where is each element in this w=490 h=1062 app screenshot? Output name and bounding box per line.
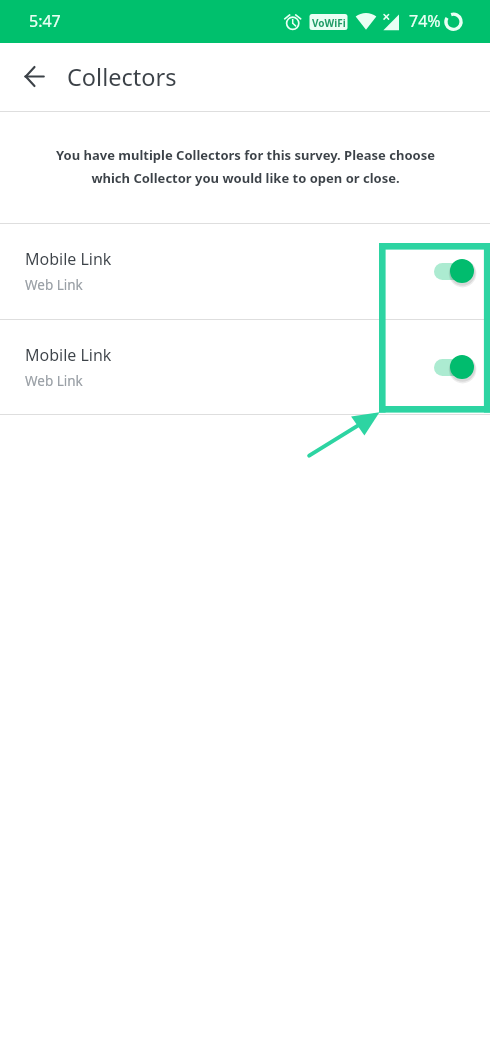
button[interactable]: Back <box>12 54 57 99</box>
button[interactable]: Toggle collector <box>434 352 476 382</box>
staticText: Mobile Link <box>25 344 112 366</box>
staticText: Mobile Link <box>25 248 112 270</box>
staticText: You have multiple Collectors for this su… <box>56 146 435 186</box>
button[interactable]: Mobile Link <box>0 320 490 414</box>
staticText: Web Link <box>25 372 83 390</box>
staticText: Collectors <box>67 61 177 93</box>
button[interactable]: Mobile Link <box>0 224 490 319</box>
staticText: 74% <box>409 10 441 32</box>
staticText: Web Link <box>25 276 83 294</box>
button[interactable]: Toggle collector <box>434 256 476 286</box>
staticText: 5:47 <box>29 10 61 32</box>
staticText: VoWiFi <box>312 16 346 30</box>
